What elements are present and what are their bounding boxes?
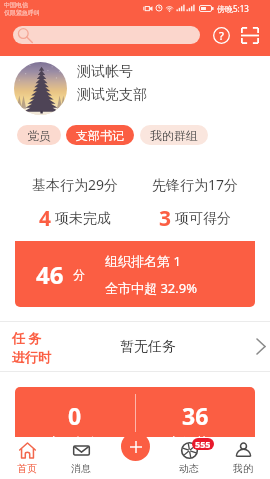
staticText: 基本行为29分 — [32, 175, 119, 194]
staticText: 项未完成 — [55, 210, 111, 228]
staticText: 消息 — [71, 462, 91, 475]
button[interactable]: 首页 — [0, 437, 54, 479]
staticText: 动态 — [179, 462, 199, 475]
button[interactable]: 36 — [135, 387, 255, 443]
staticText: 本月组织 — [47, 435, 103, 443]
staticText: 暂无任务 — [120, 338, 176, 356]
staticText: ? — [219, 28, 224, 43]
staticText: 测试帐号 — [77, 63, 133, 81]
staticText: 我的群组 — [150, 128, 198, 143]
staticText: 本年基层 — [167, 435, 223, 443]
button[interactable]: 0 — [15, 387, 135, 443]
staticText: 46 — [36, 258, 64, 291]
staticText: 0 — [68, 400, 82, 431]
staticText: 4 — [39, 204, 52, 233]
staticText: 555 — [195, 438, 211, 450]
staticText: 党员 — [27, 128, 51, 143]
button[interactable]: 测试帐号 — [0, 61, 270, 115]
button[interactable]: Add — [121, 432, 150, 461]
staticText: 任 务 — [12, 329, 42, 347]
staticText: 支部书记 — [76, 128, 124, 143]
staticText: 仅限紧急呼叫 — [4, 9, 40, 17]
button[interactable]: Scan QR code — [240, 26, 260, 44]
staticText: 分 — [73, 267, 85, 282]
staticText: 中国电信 — [4, 1, 28, 9]
button[interactable]: 我的 — [216, 437, 270, 479]
button[interactable]: 先锋行为17分 — [135, 175, 255, 233]
staticText: 测试党支部 — [77, 86, 147, 104]
staticText: 全市中超 32.9% — [105, 279, 197, 297]
staticText: 先锋行为17分 — [152, 175, 239, 194]
staticText: 我的 — [233, 462, 253, 475]
button[interactable]: 555 — [162, 437, 216, 479]
staticText: 3 — [159, 204, 172, 233]
staticText: 傍晚5:13 — [217, 3, 249, 14]
staticText: 进行时 — [12, 349, 51, 365]
button[interactable]: 任 务 — [0, 322, 270, 371]
button[interactable]: 我的群组 — [140, 125, 208, 145]
button[interactable]: 党员 — [17, 125, 61, 145]
staticText: 首页 — [17, 462, 37, 475]
button[interactable]: 基本行为29分 — [15, 175, 135, 233]
staticText: 项可得分 — [175, 210, 231, 228]
staticText: 组织排名第 1 — [105, 252, 181, 270]
button[interactable]: Help — [211, 26, 231, 44]
staticText: 36 — [182, 400, 209, 431]
button[interactable]: Search — [13, 26, 200, 44]
button[interactable]: 支部书记 — [66, 125, 134, 145]
button[interactable]: 消息 — [54, 437, 108, 479]
